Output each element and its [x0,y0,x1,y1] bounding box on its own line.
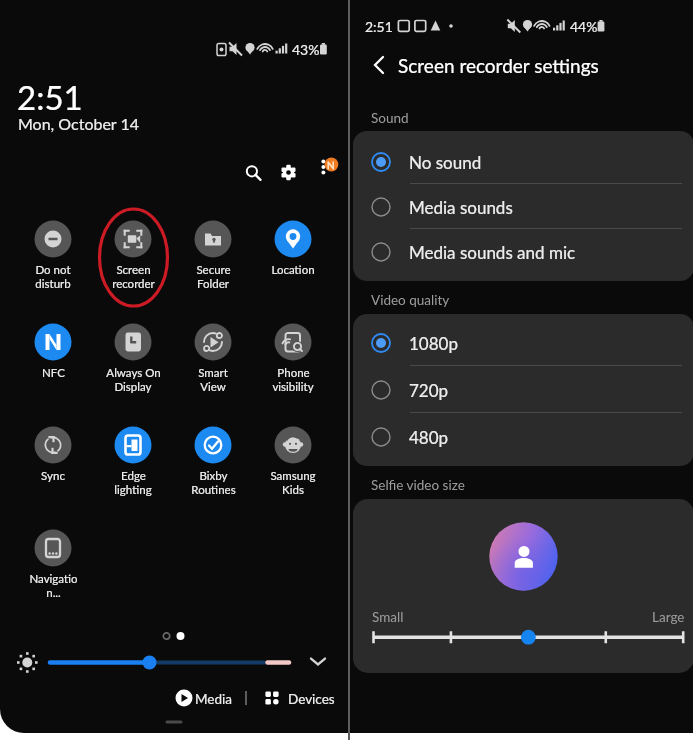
button[interactable]: Do not [14,217,92,297]
staticText: Media sounds and mic [409,242,576,262]
button[interactable]: Always On [94,320,172,400]
button[interactable]: Secure [174,217,252,297]
staticText: visibility [272,380,314,394]
staticText: Display [114,380,152,394]
button[interactable]: NFC [14,320,92,400]
button[interactable]: Location [254,217,332,297]
button[interactable]: Navigatio [14,526,92,606]
staticText: 43% [292,41,320,58]
staticText: N [327,159,335,171]
staticText: Media sounds [409,197,513,217]
staticText: disturb [35,277,71,291]
staticText: Sound [371,110,409,126]
button[interactable]: Screen [94,217,172,297]
staticText: Devices [288,691,335,707]
button[interactable]: 480p [353,413,693,460]
button[interactable]: 1080p [353,319,693,366]
button[interactable]: Smart [174,320,252,400]
staticText: 2:51 [17,77,83,117]
button[interactable]: Samsung [254,423,332,503]
button[interactable]: Settings [276,159,302,185]
staticText: 720p [409,380,449,400]
staticText: Smart [198,366,228,380]
staticText: Phone [277,366,310,380]
staticText: recorder [112,277,155,291]
staticText: 480p [409,427,449,447]
button[interactable]: 720p [353,366,693,413]
staticText: Selfie video size [371,477,465,493]
button[interactable]: Back [364,50,394,80]
button[interactable]: Sync [14,423,92,503]
staticText: lighting [114,483,152,497]
staticText: Video quality [371,292,450,308]
staticText: 44% [570,18,598,35]
staticText: Do not [35,263,71,277]
button[interactable]: Search [239,159,265,185]
staticText: 1080p [409,333,458,353]
button[interactable]: Media [172,686,232,711]
button[interactable]: Phone [254,320,332,400]
button[interactable]: No sound [353,139,693,184]
staticText: Routines [191,483,236,497]
staticText: Secure [196,263,231,277]
staticText: Samsung [270,469,316,483]
staticText: Screen recorder settings [398,54,599,77]
staticText: Navigatio [29,572,78,586]
staticText: Edge [121,469,146,483]
button[interactable]: Devices [260,686,335,711]
staticText: n... [46,586,61,600]
staticText: Bixby [199,469,228,483]
staticText: Kids [282,483,304,497]
staticText: Location [271,263,315,277]
staticText: Screen [116,263,151,277]
button[interactable]: Media sounds and mic [353,229,693,274]
staticText: Media [195,691,232,707]
staticText: Sync [41,469,65,483]
button[interactable]: Media sounds [353,184,693,229]
staticText: NFC [42,366,65,380]
staticText: Always On [106,366,161,380]
staticText: 2:51 [365,18,393,35]
staticText: No sound [409,152,482,172]
button[interactable]: More options [311,156,339,184]
button[interactable]: Bixby [174,423,252,503]
staticText: Large [652,609,685,625]
button[interactable]: Edge [94,423,172,503]
staticText: View [200,380,226,394]
staticText: Mon, October 14 [18,114,139,133]
staticText: Small [372,609,404,625]
staticText: Folder [197,277,229,291]
